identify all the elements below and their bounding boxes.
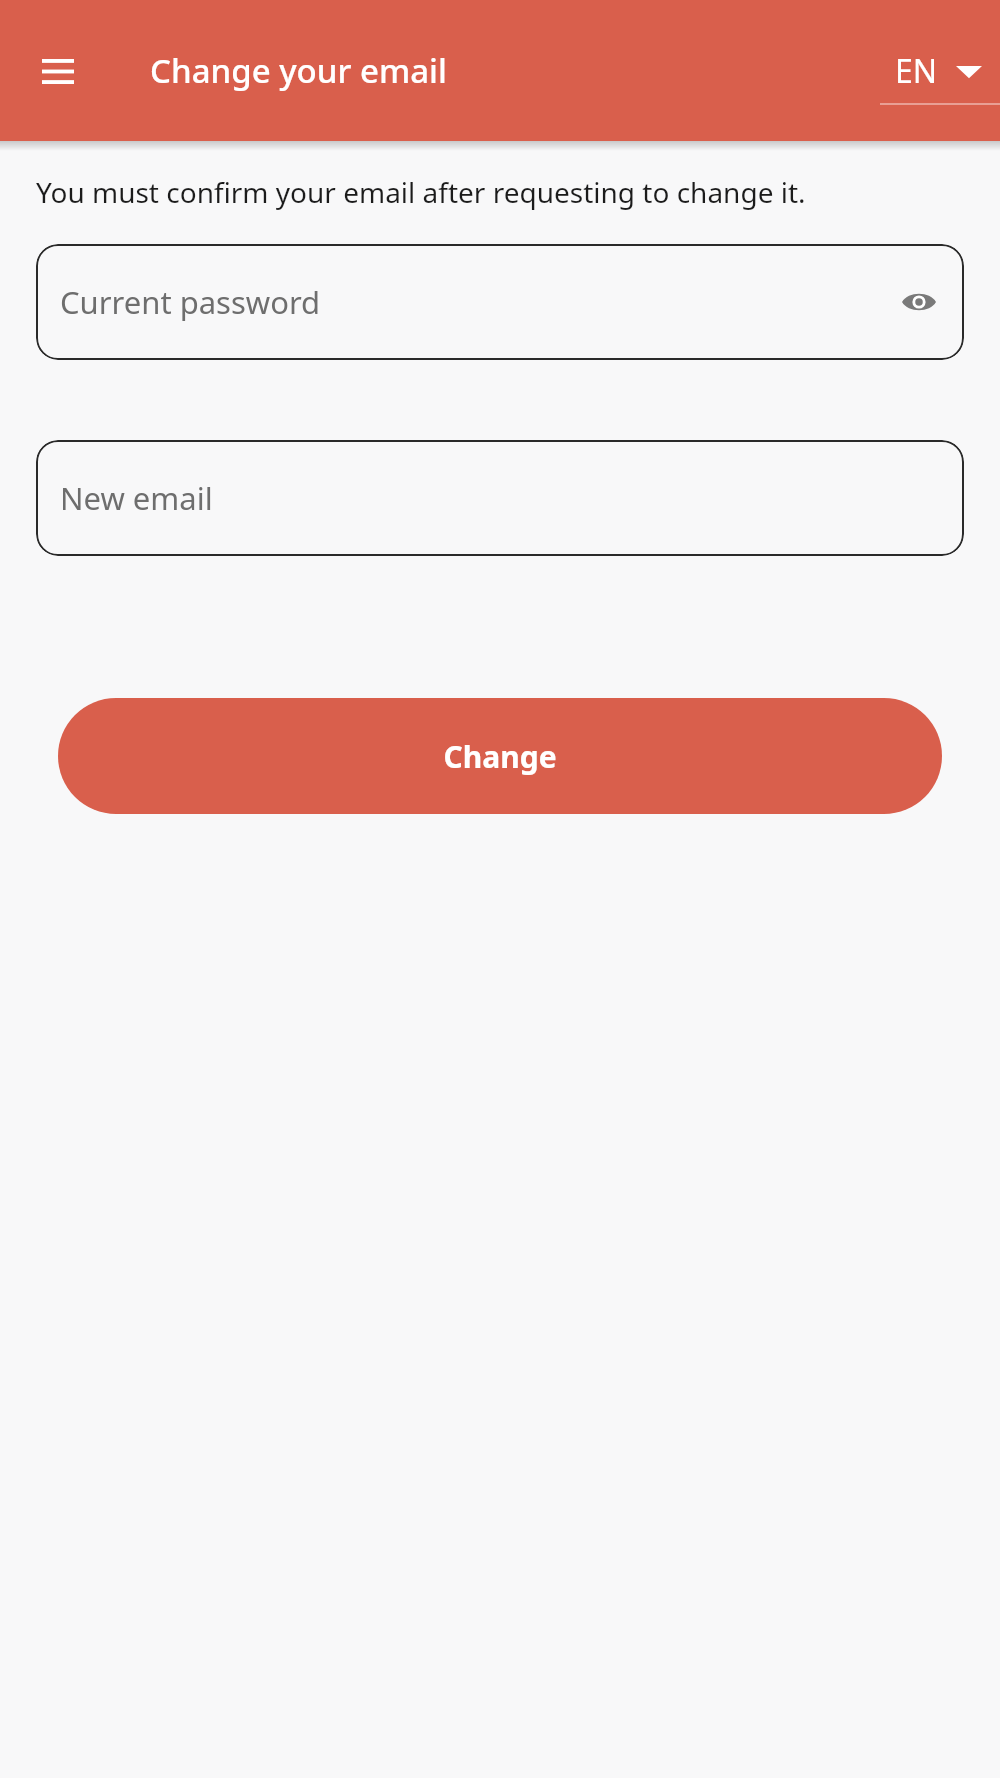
staticText: Change your email — [150, 48, 447, 93]
button[interactable]: Current password — [36, 244, 964, 360]
button[interactable]: Change — [58, 698, 942, 814]
button[interactable]: Show password — [888, 271, 950, 333]
staticText: Change — [443, 736, 557, 777]
staticText: New email — [60, 477, 213, 519]
button[interactable]: Open navigation menu — [22, 35, 94, 107]
button[interactable]: New email — [36, 440, 964, 556]
button[interactable]: EN — [895, 49, 990, 93]
staticText: EN — [895, 49, 938, 93]
staticText: Current password — [60, 281, 321, 323]
staticText: You must confirm your email after reques… — [36, 173, 806, 211]
